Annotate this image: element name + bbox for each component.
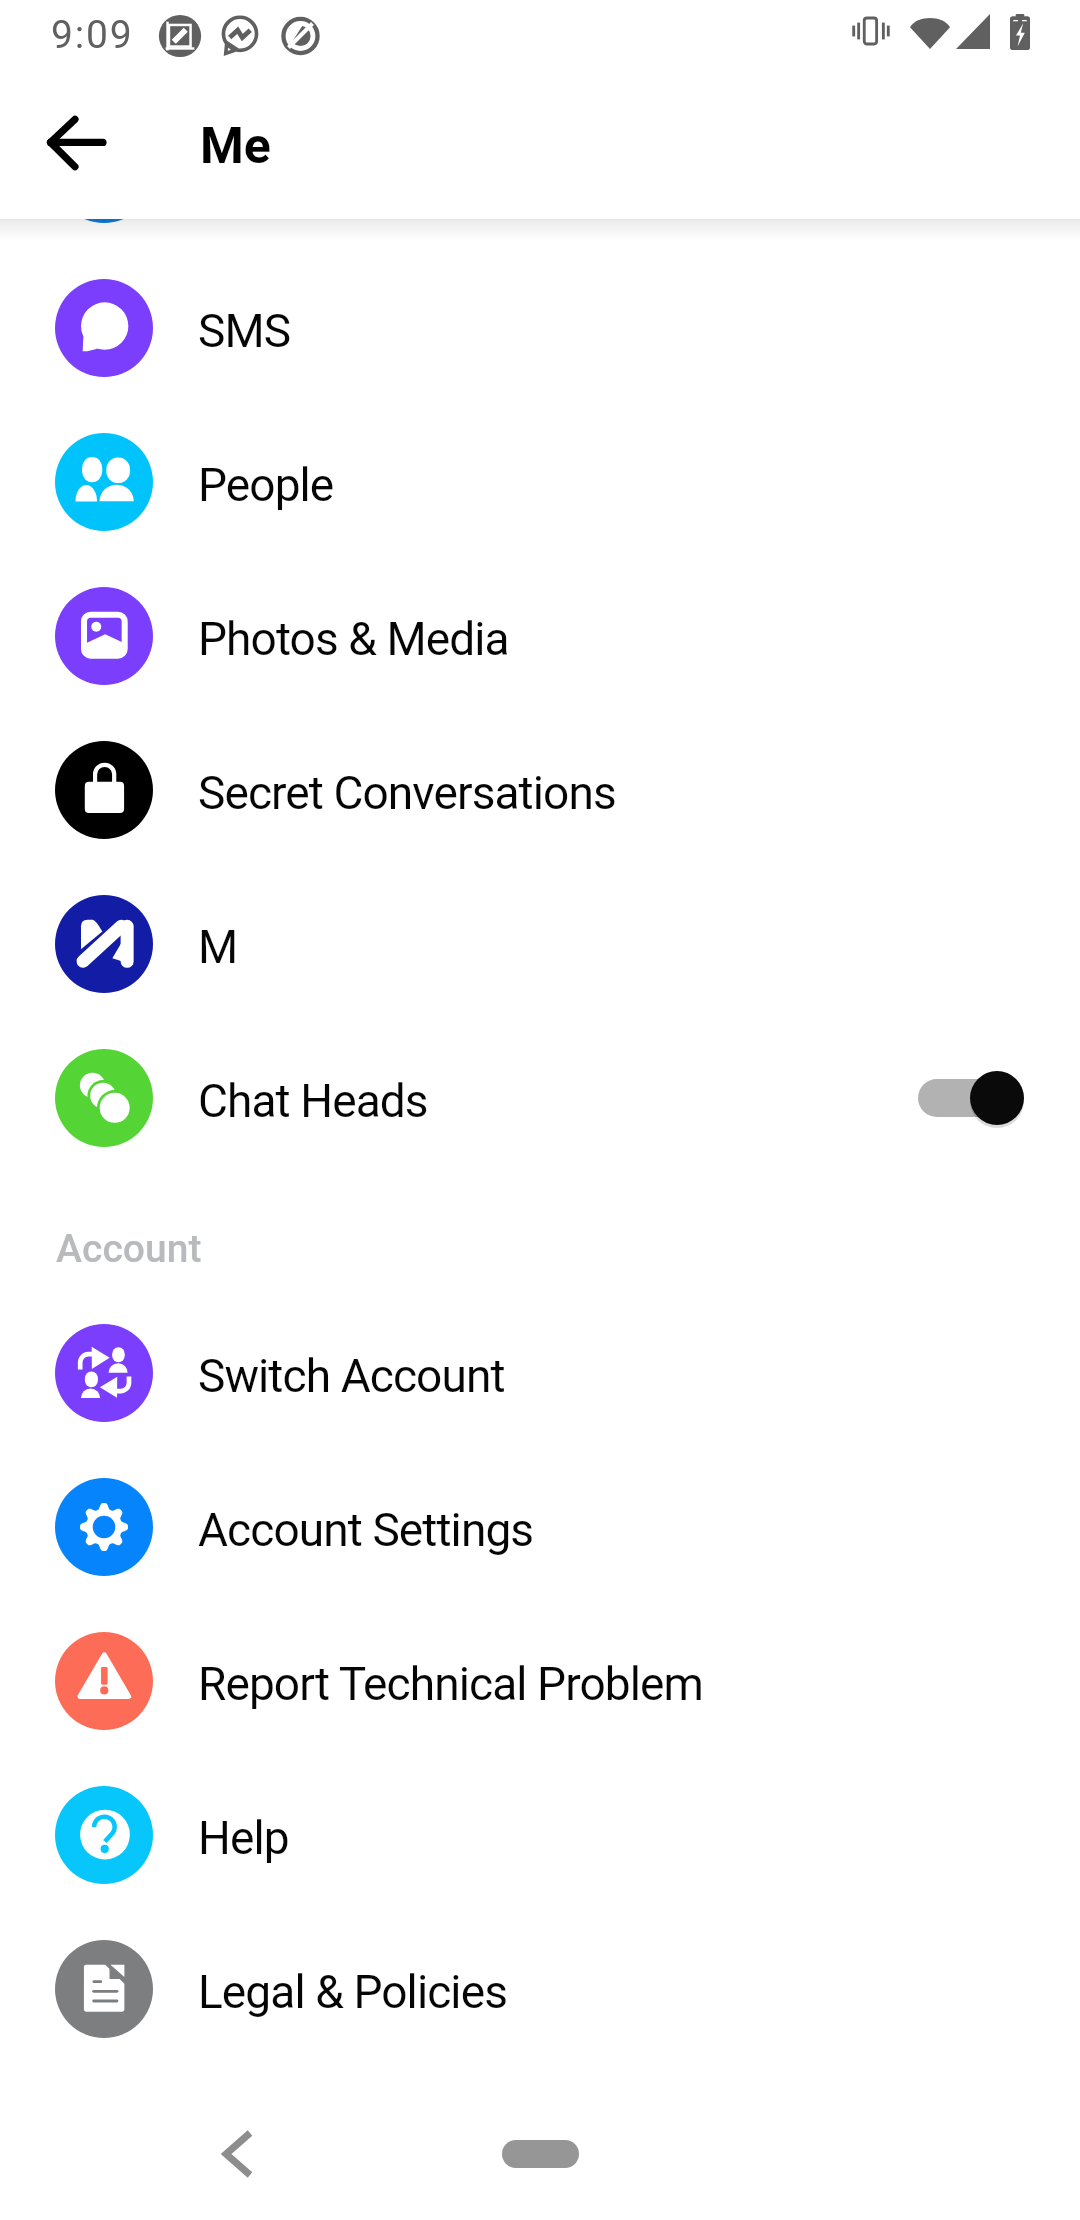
button[interactable]: Chat Heads — [0, 1021, 1080, 1175]
staticText: Switch Account — [198, 1349, 505, 1403]
staticText: Me — [200, 117, 271, 176]
staticText: Secret Conversations — [198, 766, 616, 820]
button[interactable]: M — [0, 867, 1080, 1021]
button[interactable]: Help — [0, 1758, 1080, 1912]
staticText: Legal & Policies — [198, 1965, 507, 2019]
button[interactable]: Secret Conversations — [0, 713, 1080, 867]
button[interactable]: SMS — [0, 251, 1080, 405]
button[interactable]: Back — [24, 91, 128, 195]
staticText: Account Settings — [198, 1503, 534, 1557]
staticText: Report Technical Problem — [198, 1657, 703, 1711]
staticText: People — [198, 458, 334, 512]
button[interactable]: People — [0, 405, 1080, 559]
button[interactable]: Report Technical Problem — [0, 1604, 1080, 1758]
staticText: M — [198, 920, 238, 974]
staticText: SMS — [198, 304, 291, 358]
staticText: Account — [56, 1226, 202, 1272]
button[interactable]: Photos & Media — [0, 559, 1080, 713]
button[interactable]: Home — [502, 2140, 579, 2168]
staticText: Chat Heads — [198, 1074, 428, 1128]
button[interactable]: Back — [187, 2104, 287, 2204]
button[interactable]: Toggle Chat Heads — [900, 1062, 1040, 1136]
button[interactable]: Account Settings — [0, 1450, 1080, 1604]
staticText: Photos & Media — [198, 612, 509, 666]
button[interactable]: Legal & Policies — [0, 1912, 1080, 2066]
staticText: Help — [198, 1811, 289, 1865]
button[interactable]: Switch Account — [0, 1296, 1080, 1450]
staticText: 9:09 — [51, 12, 134, 58]
